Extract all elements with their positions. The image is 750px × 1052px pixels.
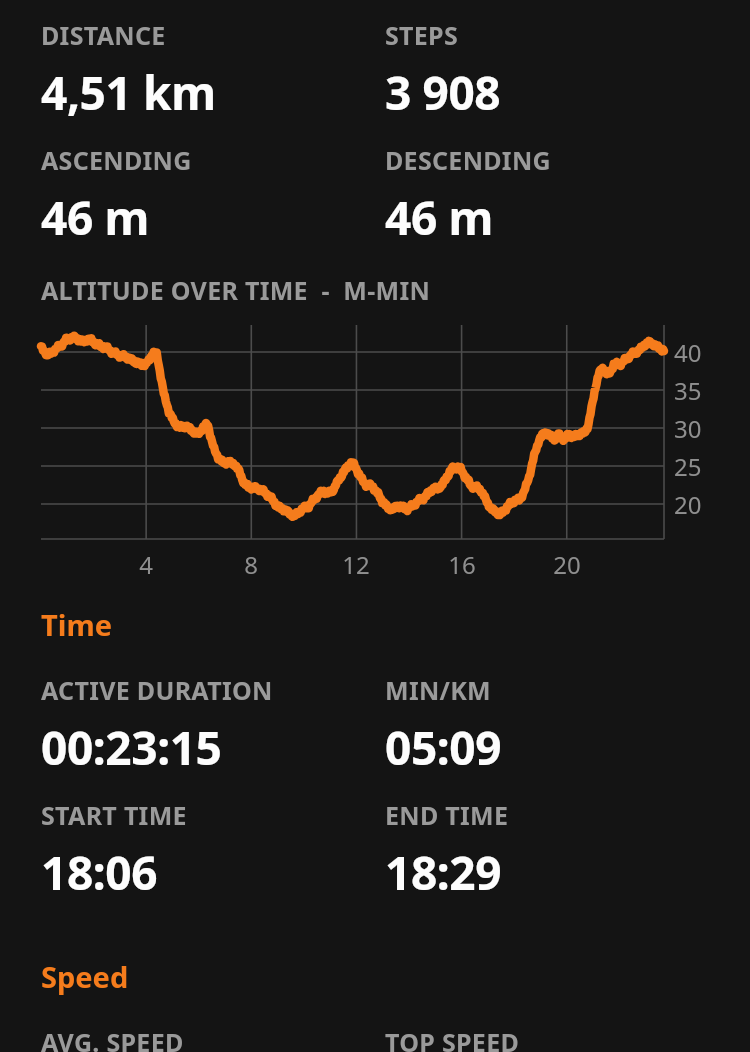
button[interactable]: ACTIVE DURATION [41,671,273,779]
staticText: 3 908 [385,61,501,124]
staticText: END TIME [385,798,509,832]
staticText: Speed [41,957,129,996]
button[interactable]: START TIME [41,796,187,904]
staticText: 35 [674,374,702,407]
button[interactable]: ASCENDING [41,141,192,249]
staticText: AVG. SPEED [41,1025,184,1052]
staticText: STEPS [385,18,459,52]
staticText: 25 [674,450,702,483]
staticText: 46 m [41,186,149,249]
button[interactable]: END TIME [385,796,509,904]
staticText: 40 [674,336,702,369]
button[interactable]: Altitude over time chart [41,320,664,544]
button[interactable]: Speed [41,957,129,996]
button[interactable]: Time [41,605,112,644]
staticText: 05:09 [385,716,502,779]
staticText: ALTITUDE OVER TIME - M-MIN [41,273,431,307]
staticText: 00:23:15 [41,716,222,779]
button[interactable]: DESCENDING [385,141,551,249]
staticText: 20 [674,488,702,521]
staticText: START TIME [41,798,187,832]
staticText: 4 [124,548,168,581]
button[interactable]: AVG. SPEED [41,1023,290,1052]
staticText: 16 [440,548,484,581]
staticText: 46 m [385,186,493,249]
staticText: 20 [545,548,589,581]
staticText: TOP SPEED [385,1025,520,1052]
staticText: 12 [334,548,378,581]
staticText: DISTANCE [41,18,166,52]
button[interactable]: TOP SPEED [385,1023,634,1052]
button[interactable]: DISTANCE [41,16,216,124]
staticText: 18:29 [385,841,502,904]
staticText: 30 [674,412,702,445]
staticText: 4,51 km [41,61,216,124]
button[interactable]: STEPS [385,16,501,124]
staticText: DESCENDING [385,143,551,177]
staticText: 18:06 [41,841,158,904]
staticText: 8 [229,548,273,581]
staticText: ACTIVE DURATION [41,673,273,707]
staticText: MIN/KM [385,673,491,707]
staticText: ASCENDING [41,143,192,177]
staticText: Time [41,605,112,644]
button[interactable]: MIN/KM [385,671,502,779]
